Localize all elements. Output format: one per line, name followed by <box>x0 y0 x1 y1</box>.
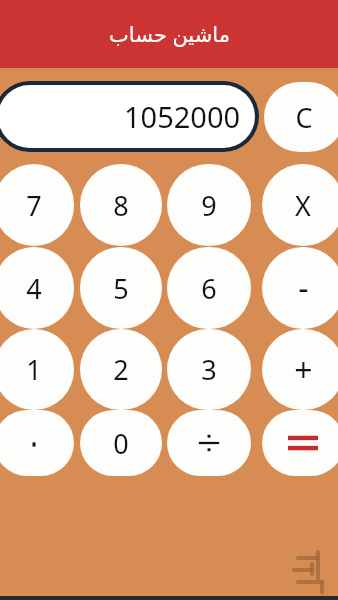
button[interactable]: Decimal point <box>0 410 74 476</box>
button[interactable]: 2 <box>80 329 162 410</box>
button[interactable]: Equals <box>262 410 338 476</box>
button[interactable]: C <box>264 82 338 152</box>
staticText: ماشین حساب <box>109 20 230 49</box>
button[interactable]: + <box>262 329 338 410</box>
staticText: 8 <box>113 187 129 224</box>
staticText: C <box>295 99 313 136</box>
button[interactable]: 0 <box>80 410 162 476</box>
button[interactable]: X <box>262 164 338 246</box>
staticText: 6 <box>201 270 217 307</box>
button[interactable]: Divide <box>167 410 251 476</box>
staticText: 9 <box>201 187 217 224</box>
staticText: 2 <box>113 351 129 388</box>
staticText: - <box>298 266 309 310</box>
button[interactable]: 5 <box>80 247 162 329</box>
staticText: 7 <box>26 187 42 224</box>
staticText: 1052000 <box>124 97 241 136</box>
staticText: 0 <box>113 425 129 462</box>
button[interactable]: 9 <box>167 164 251 246</box>
staticText: 1 <box>26 351 42 388</box>
button[interactable]: 1 <box>0 329 74 410</box>
button[interactable]: 7 <box>0 164 74 246</box>
staticText: + <box>294 348 313 392</box>
staticText: 5 <box>113 270 129 307</box>
button[interactable]: 3 <box>167 329 251 410</box>
staticText: 3 <box>201 351 217 388</box>
button[interactable]: - <box>262 247 338 329</box>
staticText: 4 <box>26 270 42 307</box>
button[interactable]: 8 <box>80 164 162 246</box>
staticText: X <box>295 187 311 224</box>
button[interactable]: 6 <box>167 247 251 329</box>
button[interactable]: 1052000 <box>0 81 259 152</box>
button[interactable]: 4 <box>0 247 74 329</box>
